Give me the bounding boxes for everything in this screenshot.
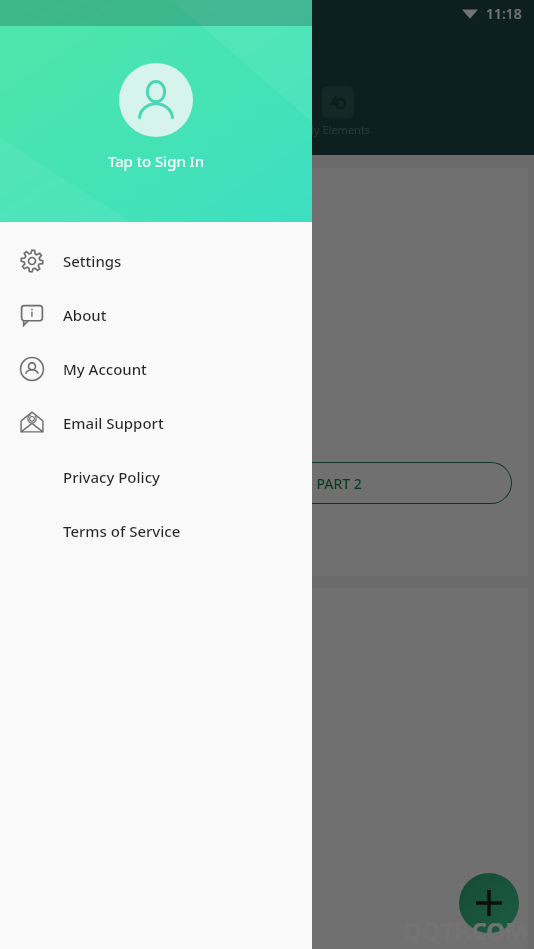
button[interactable]: Settings bbox=[0, 234, 312, 288]
button[interactable]: Terms of Service bbox=[0, 504, 312, 558]
staticText: QQTF.COM bbox=[403, 914, 528, 947]
button[interactable]: GETTING STARTED — PART 2 bbox=[22, 462, 512, 504]
staticText: My Elements bbox=[304, 122, 371, 137]
button[interactable]: Email Support bbox=[0, 396, 312, 450]
staticText: Terms of Service bbox=[63, 521, 181, 541]
staticText: Settings bbox=[63, 251, 122, 271]
staticText: 11:18 bbox=[486, 4, 522, 23]
button[interactable]: Check out the first motion graphics tuto… bbox=[6, 168, 528, 576]
staticText: Tap to Sign In bbox=[108, 151, 204, 171]
staticText: My Account bbox=[63, 359, 147, 379]
button[interactable]: Privacy Policy bbox=[0, 450, 312, 504]
button[interactable]: About bbox=[0, 288, 312, 342]
button[interactable]: Shoutouts! bbox=[6, 588, 528, 949]
staticText: About bbox=[63, 305, 107, 325]
button[interactable]: My Account bbox=[0, 342, 312, 396]
staticText: Check out the first motion graphics tuto… bbox=[22, 364, 287, 434]
staticText: Privacy Policy bbox=[63, 467, 160, 487]
staticText: GETTING STARTED — PART 2 bbox=[173, 474, 362, 493]
button[interactable]: My Elements bbox=[300, 82, 375, 141]
button[interactable]: Tap to Sign In bbox=[108, 63, 204, 171]
button[interactable]: Add bbox=[459, 873, 519, 933]
staticText: Email Support bbox=[63, 413, 164, 433]
